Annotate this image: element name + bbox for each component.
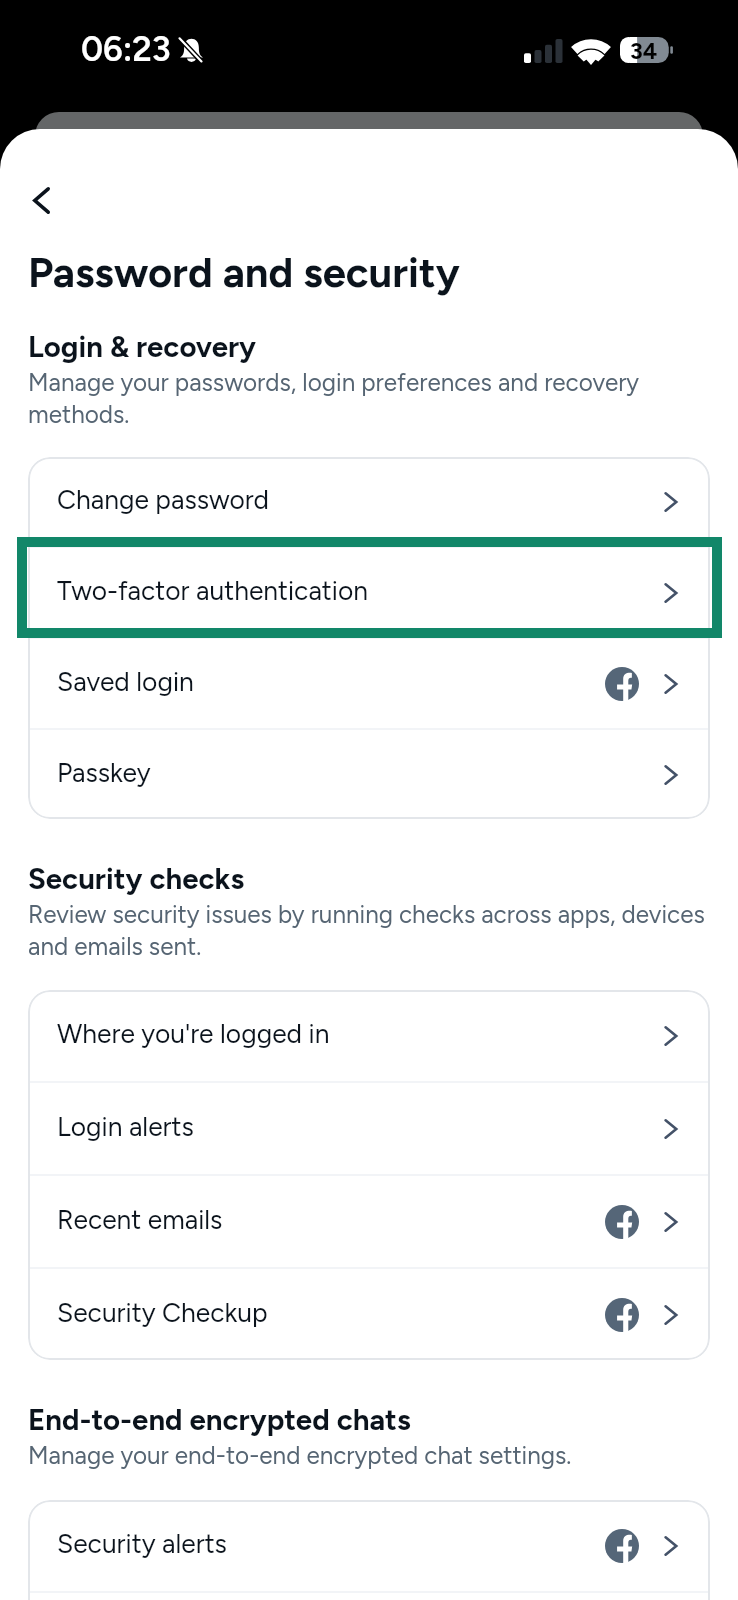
- staticText: Change password: [57, 484, 270, 516]
- staticText: Where you're logged in: [57, 1018, 330, 1050]
- staticText: Review security issues by running checks…: [28, 900, 708, 961]
- staticText: Login & recovery: [28, 329, 257, 364]
- staticText: Recent emails: [57, 1204, 223, 1236]
- staticText: Security Checkup: [57, 1297, 268, 1329]
- staticText: End-to-end encrypted chats: [28, 1402, 411, 1437]
- staticText: Security checks: [28, 861, 245, 896]
- staticText: Manage your end-to-end encrypted chat se…: [28, 1441, 572, 1470]
- button[interactable]: Recent emails: [28, 1176, 710, 1267]
- button[interactable]: Where you're logged in: [28, 990, 710, 1081]
- staticText: Two-factor authentication: [57, 575, 368, 607]
- staticText: Saved login: [57, 666, 194, 698]
- button[interactable]: Passkey: [28, 730, 710, 819]
- staticText: Passkey: [57, 757, 151, 789]
- staticText: Security alerts: [57, 1528, 227, 1560]
- button[interactable]: Security alerts: [28, 1500, 710, 1591]
- staticText: Login alerts: [57, 1111, 194, 1143]
- staticText: Password and security: [28, 247, 460, 297]
- button[interactable]: Security Checkup: [28, 1269, 710, 1360]
- button[interactable]: Login alerts: [28, 1083, 710, 1174]
- button[interactable]: Saved login: [28, 639, 710, 728]
- staticText: 06:23: [81, 29, 171, 70]
- staticText: 34: [630, 37, 658, 63]
- staticText: Manage your passwords, login preferences…: [28, 368, 708, 429]
- button[interactable]: Two-factor authentication: [28, 548, 710, 637]
- button[interactable]: Change password: [28, 457, 710, 546]
- button[interactable]: Back: [13, 172, 69, 228]
